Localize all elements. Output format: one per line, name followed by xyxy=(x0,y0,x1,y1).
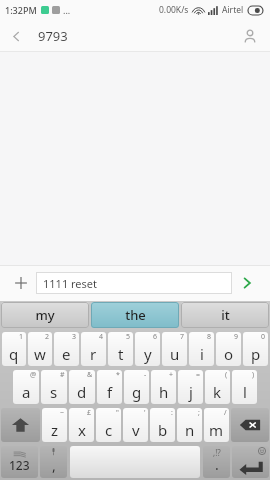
button[interactable]: ' xyxy=(123,408,148,442)
staticText: - xyxy=(144,370,147,380)
staticText: 9793 xyxy=(38,27,68,45)
staticText: ( xyxy=(225,370,228,380)
button[interactable]: / xyxy=(204,408,229,442)
staticText: e xyxy=(62,344,71,364)
staticText: + xyxy=(169,370,174,380)
staticText: @ xyxy=(30,370,37,380)
staticText: 3 xyxy=(72,332,77,342)
button[interactable]: the xyxy=(91,302,179,328)
staticText: 1 xyxy=(19,332,24,342)
button[interactable]: 5 xyxy=(108,332,133,366)
button[interactable]: ; xyxy=(177,408,202,442)
button[interactable]: ) xyxy=(232,370,257,404)
staticText: b xyxy=(158,420,168,440)
staticText: 8 xyxy=(207,332,212,342)
button[interactable]: ( xyxy=(205,370,230,404)
button[interactable]: Add attachment xyxy=(8,270,34,296)
button[interactable]: + xyxy=(151,370,176,404)
staticText: m xyxy=(209,420,224,440)
button[interactable]: Contact info xyxy=(234,20,266,52)
staticText: 9 xyxy=(234,332,239,342)
button[interactable]: : xyxy=(150,408,175,442)
staticText: my xyxy=(35,306,55,324)
staticText: x xyxy=(78,420,86,440)
staticText: 7 xyxy=(180,332,185,342)
staticText: i xyxy=(200,344,204,364)
button[interactable]: Send xyxy=(232,268,262,298)
button[interactable]: * xyxy=(97,370,122,404)
button[interactable]: 0 xyxy=(243,332,268,366)
staticText: c xyxy=(105,420,113,440)
staticText: " xyxy=(116,408,119,418)
button[interactable]: & xyxy=(69,370,95,404)
button[interactable]: 7 xyxy=(162,332,187,366)
button[interactable]: = xyxy=(178,370,203,404)
staticText: / xyxy=(224,408,227,418)
staticText: p xyxy=(251,344,261,364)
button[interactable]: 1 xyxy=(2,332,26,366)
button[interactable]: Comma and voice input xyxy=(40,446,67,478)
button[interactable]: 8 xyxy=(189,332,214,366)
button[interactable]: Punctuation xyxy=(203,446,230,478)
button[interactable]: 1111 reset xyxy=(36,272,232,294)
button[interactable]: £ xyxy=(69,408,94,442)
staticText: s xyxy=(50,382,58,402)
staticText: it xyxy=(221,306,230,324)
staticText: y xyxy=(144,344,152,364)
staticText: 0.00K/s xyxy=(159,4,189,16)
staticText: Airtel xyxy=(222,4,244,16)
staticText: : xyxy=(171,408,173,418)
staticText: h xyxy=(159,382,169,402)
staticText: g xyxy=(132,382,142,402)
staticText: k xyxy=(213,382,222,402)
button[interactable]: 9 xyxy=(216,332,241,366)
button[interactable]: " xyxy=(96,408,121,442)
button[interactable]: - xyxy=(124,370,149,404)
staticText: ' xyxy=(144,408,146,418)
staticText: 1111 reset xyxy=(43,276,97,291)
staticText: ... xyxy=(63,4,71,16)
staticText: l xyxy=(243,382,247,402)
staticText: 4 xyxy=(99,332,104,342)
staticText: ) xyxy=(252,370,255,380)
staticText: = xyxy=(196,370,201,380)
button[interactable]: 2 xyxy=(28,332,52,366)
staticText: the xyxy=(125,306,146,324)
button[interactable]: Back xyxy=(0,20,32,52)
staticText: w xyxy=(34,344,46,364)
staticText: , xyxy=(52,456,56,475)
button[interactable]: Shift xyxy=(1,408,40,442)
button[interactable]: Numbers and symbols xyxy=(1,446,38,478)
staticText: r xyxy=(90,344,97,364)
staticText: 0 xyxy=(261,332,266,342)
staticText: a xyxy=(22,382,31,402)
staticText: 1:32PM xyxy=(5,4,37,16)
staticText: u xyxy=(170,344,180,364)
staticText: q xyxy=(9,344,19,364)
button[interactable]: 6 xyxy=(135,332,160,366)
button[interactable]: it xyxy=(181,302,269,328)
button[interactable]: Space xyxy=(70,446,200,478)
staticText: v xyxy=(132,420,140,440)
button[interactable]: 3 xyxy=(54,332,79,366)
staticText: * xyxy=(116,370,120,380)
staticText: f xyxy=(107,382,113,402)
button[interactable]: # xyxy=(41,370,67,404)
staticText: ; xyxy=(198,408,200,418)
button[interactable]: ~ xyxy=(42,408,67,442)
staticText: t xyxy=(118,344,124,364)
button[interactable]: my xyxy=(1,302,89,328)
staticText: ,!? xyxy=(213,447,221,458)
staticText: z xyxy=(51,420,59,440)
button[interactable]: Enter xyxy=(232,446,269,478)
staticText: ~ xyxy=(60,408,65,418)
staticText: £ xyxy=(87,408,92,418)
button[interactable]: @ xyxy=(13,370,39,404)
button[interactable]: 4 xyxy=(81,332,106,366)
staticText: j xyxy=(189,382,193,402)
staticText: 6 xyxy=(153,332,158,342)
staticText: & xyxy=(87,370,93,380)
staticText: 123 xyxy=(9,457,30,473)
staticText: . xyxy=(215,455,219,474)
button[interactable]: Backspace xyxy=(231,408,269,442)
